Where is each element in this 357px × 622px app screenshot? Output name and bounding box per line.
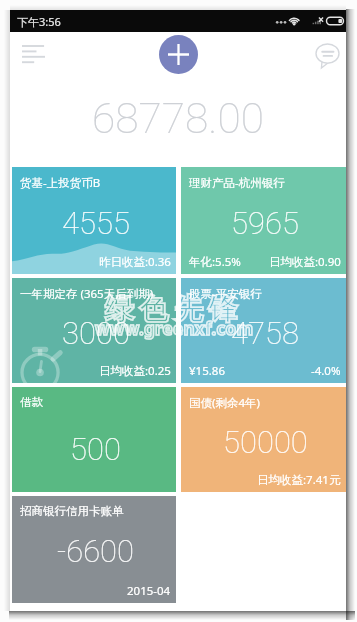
staticText: 股票-平安银行 [189, 286, 262, 302]
staticText: 2015-04 [127, 583, 171, 599]
staticText: 4758 [231, 315, 299, 351]
button[interactable]: Add [159, 35, 198, 74]
button[interactable]: 招商银行信用卡账单 [12, 496, 176, 603]
staticText: 68778.00 [92, 94, 264, 144]
button[interactable]: 一年期定存 (365天后到期) [12, 278, 176, 383]
staticText: 一年期定存 (365天后到期) [20, 286, 154, 302]
button[interactable]: 股票-平安银行 [181, 278, 346, 383]
staticText: 年化:5.5% [189, 254, 241, 270]
button[interactable]: 理财产品-杭州银行 [181, 167, 346, 274]
staticText: 3000 [62, 315, 130, 351]
button[interactable]: 货基-上投货币B [12, 167, 176, 274]
staticText: 50000 [223, 424, 308, 460]
staticText: 日均收益:0.25 [99, 363, 171, 379]
staticText: 500 [70, 431, 121, 467]
staticText: 绿色先锋 [102, 291, 240, 328]
staticText: 招商银行信用卡账单 [20, 504, 124, 518]
button[interactable]: Menu [13, 34, 53, 74]
button[interactable]: 国债(剩余4年) [181, 387, 346, 492]
staticText: 日均收益:7.41元 [257, 472, 341, 488]
staticText: 5965 [231, 205, 299, 241]
staticText: 4555 [62, 205, 130, 241]
staticText: 昨日收益:0.36 [99, 254, 171, 270]
staticText: 理财产品-杭州银行 [189, 175, 285, 191]
staticText: 货基-上投货币B [20, 175, 101, 191]
staticText: 国债(剩余4年) [189, 395, 260, 411]
staticText: -4.0% [311, 363, 341, 379]
staticText: www.greenxf.com [95, 317, 254, 340]
button[interactable]: Messages [306, 35, 348, 77]
staticText: -6600 [57, 533, 135, 569]
staticText: 借款 [20, 395, 43, 409]
button[interactable]: 借款 [12, 387, 176, 492]
staticText: 下午3:56 [17, 14, 61, 29]
staticText: 日均收益:0.90 [269, 254, 341, 270]
staticText: ¥15.86 [189, 363, 225, 379]
